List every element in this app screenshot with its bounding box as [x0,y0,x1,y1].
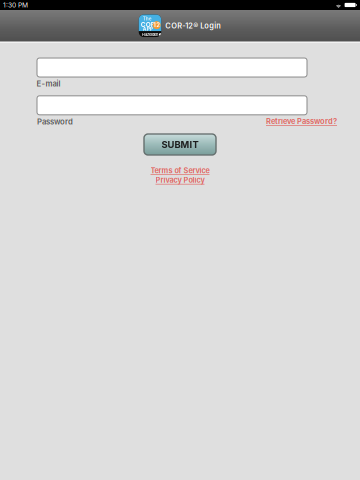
staticText: Hazelden [142,32,158,37]
staticText: Terms of Service [150,166,209,175]
staticText: APP [143,26,153,32]
button[interactable]: Terms of Service [150,166,209,175]
staticText: Retrieve Password? [266,117,337,126]
staticText: Password [37,117,73,126]
staticText: SUBMIT [161,139,198,150]
staticText: Privacy Policy [155,176,204,184]
staticText: The [143,16,152,22]
button[interactable]: Privacy Policy [155,176,204,184]
staticText: 12 [153,22,160,29]
staticText: E-mail [36,79,60,88]
staticText: COR [141,21,155,28]
button[interactable]: Retrieve Password? [266,117,337,126]
staticText: COR-12® Login [165,21,221,30]
button[interactable]: SUBMIT [144,134,216,155]
staticText: 1:30 PM [3,1,28,9]
